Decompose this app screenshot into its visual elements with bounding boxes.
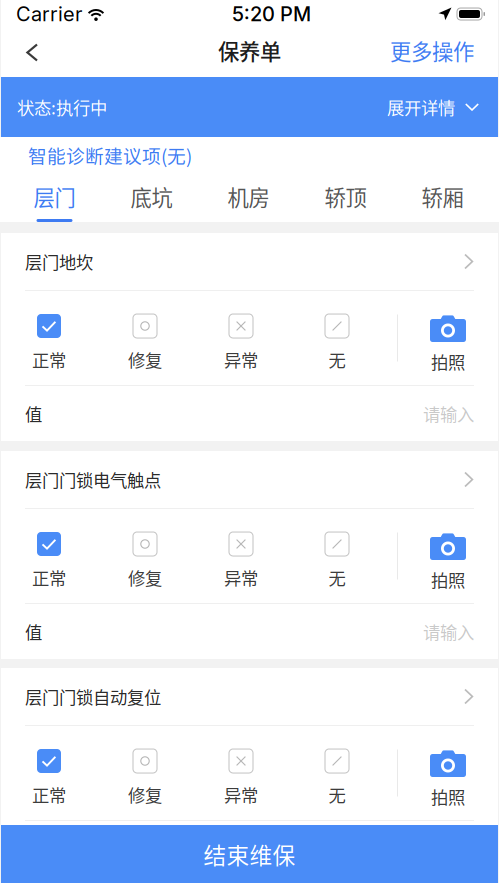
- staticText: 轿厢: [421, 181, 463, 212]
- staticText: 无: [328, 347, 345, 372]
- staticText: 底坑: [130, 181, 172, 212]
- staticText: 正常: [32, 347, 66, 372]
- staticText: 拍照: [431, 784, 465, 809]
- button[interactable]: 层门地坎: [1, 233, 498, 290]
- button[interactable]: 请输入: [423, 389, 474, 438]
- staticText: 异常: [224, 782, 258, 807]
- button[interactable]: 机房: [200, 173, 297, 222]
- staticText: 值: [25, 401, 42, 426]
- button[interactable]: 更多操作: [376, 24, 498, 81]
- staticText: 修复: [128, 782, 162, 807]
- button[interactable]: 正常: [1, 509, 97, 603]
- button[interactable]: 轿顶: [297, 173, 394, 222]
- button[interactable]: 结束维保: [1, 825, 498, 883]
- staticText: 轿顶: [324, 181, 366, 212]
- staticText: 智能诊断建议项(无): [28, 141, 192, 168]
- button[interactable]: 拍照: [398, 291, 498, 385]
- staticText: 层门门锁自动复位: [25, 684, 161, 709]
- staticText: 异常: [224, 347, 258, 372]
- button[interactable]: 无: [289, 726, 385, 820]
- staticText: 5:20 PM: [232, 2, 311, 26]
- button[interactable]: 返回: [1, 29, 56, 75]
- button[interactable]: 层门门锁电气触点: [1, 451, 498, 508]
- staticText: 层门门锁电气触点: [25, 467, 161, 492]
- button[interactable]: 请输入: [423, 824, 474, 873]
- button[interactable]: 修复: [97, 509, 193, 603]
- staticText: 请输入: [423, 401, 474, 426]
- staticText: 拍照: [431, 349, 465, 374]
- staticText: 异常: [224, 565, 258, 590]
- staticText: Carrier: [16, 2, 82, 26]
- staticText: 结束维保: [203, 838, 295, 870]
- staticText: 正常: [32, 782, 66, 807]
- staticText: 修复: [128, 565, 162, 590]
- staticText: 修复: [128, 347, 162, 372]
- staticText: 机房: [227, 181, 269, 212]
- button[interactable]: 层门门锁自动复位: [1, 668, 498, 725]
- staticText: 拍照: [431, 567, 465, 592]
- staticText: 层门: [33, 181, 75, 212]
- staticText: 无: [328, 565, 345, 590]
- button[interactable]: 层门: [6, 173, 103, 222]
- button[interactable]: 底坑: [103, 173, 200, 222]
- staticText: 层门地坎: [25, 249, 93, 274]
- button[interactable]: 展开详情: [387, 80, 479, 134]
- staticText: 更多操作: [390, 35, 474, 66]
- button[interactable]: 拍照: [398, 509, 498, 603]
- staticText: 状态:执行中: [17, 94, 107, 120]
- button[interactable]: 正常: [1, 291, 97, 385]
- staticText: 请输入: [423, 619, 474, 644]
- button[interactable]: 轿厢: [394, 173, 491, 222]
- staticText: 保养单: [218, 35, 281, 66]
- button[interactable]: 异常: [193, 726, 289, 820]
- button[interactable]: 异常: [193, 509, 289, 603]
- button[interactable]: 拍照: [398, 726, 498, 820]
- button[interactable]: 修复: [97, 726, 193, 820]
- staticText: 正常: [32, 565, 66, 590]
- staticText: 展开详情: [387, 94, 455, 120]
- button[interactable]: 请输入: [423, 607, 474, 656]
- button[interactable]: 修复: [97, 291, 193, 385]
- staticText: 值: [25, 619, 42, 644]
- button[interactable]: 无: [289, 291, 385, 385]
- button[interactable]: 异常: [193, 291, 289, 385]
- button[interactable]: 无: [289, 509, 385, 603]
- button[interactable]: 正常: [1, 726, 97, 820]
- staticText: 无: [328, 782, 345, 807]
